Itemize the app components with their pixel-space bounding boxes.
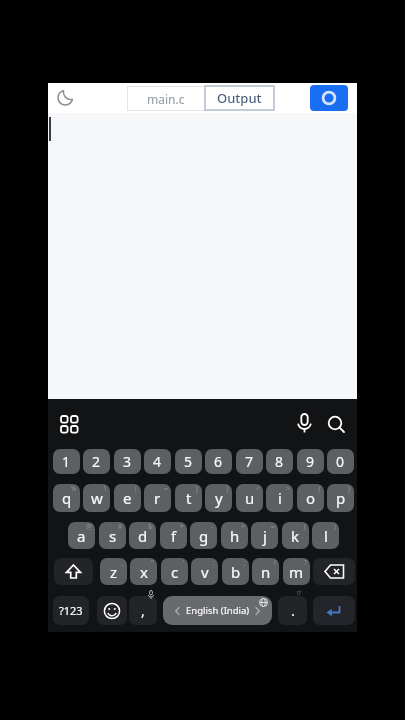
button[interactable]: 2 <box>83 449 110 474</box>
staticText: u <box>245 488 255 508</box>
staticText: z <box>110 562 118 582</box>
button[interactable]: s <box>99 522 126 549</box>
button[interactable]: c <box>161 558 188 585</box>
button[interactable]: a <box>68 522 95 549</box>
button[interactable] <box>54 558 93 585</box>
button[interactable]: f <box>160 522 187 549</box>
button[interactable]: x <box>130 558 157 585</box>
button[interactable]: 4 <box>144 449 171 474</box>
staticText: } <box>348 484 351 493</box>
button[interactable]: p <box>327 484 354 512</box>
button[interactable]: o <box>297 484 324 512</box>
staticText: \ <box>104 484 107 493</box>
button[interactable]: . <box>278 596 307 625</box>
button[interactable]: n <box>252 558 279 585</box>
button[interactable]: v <box>191 558 218 585</box>
staticText: m <box>289 562 304 582</box>
button[interactable]: 1 <box>53 449 80 474</box>
button[interactable]: u <box>236 484 263 512</box>
button[interactable]: English (India) <box>163 596 272 625</box>
button[interactable]: 3 <box>114 449 141 474</box>
button[interactable]: 5 <box>175 449 202 474</box>
staticText: k <box>291 526 300 546</box>
button[interactable]: b <box>222 558 249 585</box>
staticText: ! <box>274 558 276 567</box>
button[interactable]: r <box>144 484 171 512</box>
staticText: @ <box>86 522 92 531</box>
button[interactable]: Output <box>204 85 275 111</box>
button[interactable]: w <box>83 484 110 512</box>
button[interactable]: main.c <box>127 86 205 111</box>
staticText: # <box>118 522 123 531</box>
staticText: 0 <box>336 452 345 471</box>
button[interactable]: 9 <box>297 449 324 474</box>
button[interactable]: 0 <box>327 449 354 474</box>
button[interactable]: t <box>175 484 202 512</box>
staticText: < <box>256 484 260 493</box>
staticText: % <box>71 484 77 493</box>
staticText: y <box>215 488 223 508</box>
staticText: ? <box>304 558 307 567</box>
button[interactable] <box>97 596 127 625</box>
button[interactable]: 6 <box>205 449 232 474</box>
staticText: o <box>306 488 316 508</box>
staticText: g <box>199 526 209 546</box>
button[interactable]: z <box>100 558 127 585</box>
button[interactable]: g <box>190 522 217 549</box>
staticText: > <box>286 484 290 493</box>
staticText: { <box>318 484 321 493</box>
button[interactable] <box>295 413 314 434</box>
button[interactable] <box>57 88 75 106</box>
staticText: ( <box>304 522 306 531</box>
staticText: 1 <box>62 452 71 471</box>
staticText: ; <box>244 558 246 567</box>
button[interactable]: q <box>53 484 80 512</box>
button[interactable]: y <box>205 484 232 512</box>
staticText: 8 <box>275 452 284 471</box>
button[interactable]: h <box>221 522 248 549</box>
staticText: 2 <box>92 452 101 471</box>
button[interactable] <box>313 596 355 625</box>
staticText: h <box>230 526 240 546</box>
staticText: n <box>261 562 271 582</box>
staticText: main.c <box>147 91 185 107</box>
staticText: t <box>186 488 192 508</box>
staticText: x <box>140 562 148 582</box>
staticText: 3 <box>123 452 132 471</box>
staticText: : <box>213 558 215 567</box>
staticText: d <box>138 526 148 546</box>
staticText: s <box>109 526 117 546</box>
staticText: = <box>271 522 275 531</box>
button[interactable]: k <box>282 522 309 549</box>
staticText: 5 <box>184 452 193 471</box>
staticText: w <box>91 488 103 508</box>
button[interactable] <box>327 415 346 434</box>
button[interactable] <box>310 85 348 111</box>
button[interactable]: m <box>283 558 310 585</box>
staticText: . <box>291 601 295 620</box>
staticText: 6 <box>214 452 223 471</box>
staticText: 9 <box>306 452 315 471</box>
staticText: Output <box>217 89 262 107</box>
staticText: e <box>123 488 132 508</box>
button[interactable]: d <box>129 522 156 549</box>
button[interactable]: e <box>114 484 141 512</box>
button[interactable] <box>60 415 79 434</box>
staticText: l <box>324 526 328 546</box>
button[interactable]: i <box>266 484 293 512</box>
staticText: c <box>171 562 179 582</box>
staticText: + <box>241 522 245 531</box>
staticText: English (India) <box>186 604 250 617</box>
button[interactable]: l <box>312 522 339 549</box>
staticText: _ <box>121 558 124 567</box>
staticText: q <box>62 488 72 508</box>
staticText: = <box>164 484 168 493</box>
button[interactable]: 8 <box>266 449 293 474</box>
button[interactable]: ?123 <box>53 596 89 625</box>
button[interactable] <box>313 558 355 585</box>
button[interactable]: 7 <box>236 449 263 474</box>
button[interactable]: , <box>129 596 157 625</box>
staticText: p <box>336 488 346 508</box>
staticText: ) <box>334 522 336 531</box>
button[interactable]: j <box>251 522 278 549</box>
